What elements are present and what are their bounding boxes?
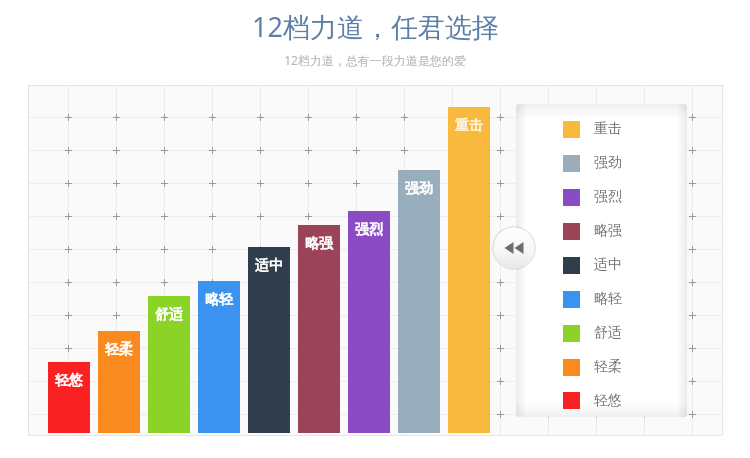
staticText: 轻柔 <box>594 358 622 376</box>
staticText: 12档力道，总有一段力道是您的爱 <box>284 52 466 68</box>
staticText: 舒适 <box>594 324 622 342</box>
staticText: 略强 <box>594 222 622 240</box>
staticText: 强劲 <box>405 180 433 198</box>
button[interactable]: 舒适 <box>148 302 190 328</box>
button[interactable]: 轻柔 <box>516 350 687 384</box>
staticText: 强劲 <box>594 154 622 172</box>
staticText: 略轻 <box>205 291 233 309</box>
button[interactable]: 轻悠 <box>516 384 687 417</box>
button[interactable]: 强烈 <box>516 180 687 214</box>
staticText: 强烈 <box>355 221 383 239</box>
staticText: 轻悠 <box>55 372 83 390</box>
button[interactable]: 略强 <box>298 231 340 257</box>
button[interactable]: 强劲 <box>398 176 440 202</box>
button[interactable]: 轻悠 <box>48 368 90 394</box>
button[interactable]: 适中 <box>248 253 290 279</box>
button[interactable]: 重击 <box>516 112 687 146</box>
button[interactable]: 舒适 <box>516 316 687 350</box>
staticText: 重击 <box>594 120 622 138</box>
button[interactable]: 略强 <box>516 214 687 248</box>
staticText: 适中 <box>594 256 622 274</box>
staticText: 轻柔 <box>105 341 133 359</box>
button[interactable]: 适中 <box>516 248 687 282</box>
button[interactable]: 强劲 <box>516 146 687 180</box>
staticText: 略轻 <box>594 290 622 308</box>
staticText: 轻悠 <box>594 392 622 410</box>
staticText: 略强 <box>305 235 333 253</box>
staticText: 重击 <box>455 117 483 135</box>
staticText: 舒适 <box>155 306 183 324</box>
staticText: 12档力道，任君选择 <box>252 8 499 45</box>
button[interactable]: 略轻 <box>516 282 687 316</box>
button[interactable]: 轻柔 <box>98 337 140 363</box>
staticText: 适中 <box>255 257 283 275</box>
button[interactable]: 收起图例 <box>492 226 536 270</box>
button[interactable]: 强烈 <box>348 217 390 243</box>
button[interactable]: 略轻 <box>198 287 240 313</box>
staticText: 强烈 <box>594 188 622 206</box>
button[interactable]: 重击 <box>448 113 490 139</box>
